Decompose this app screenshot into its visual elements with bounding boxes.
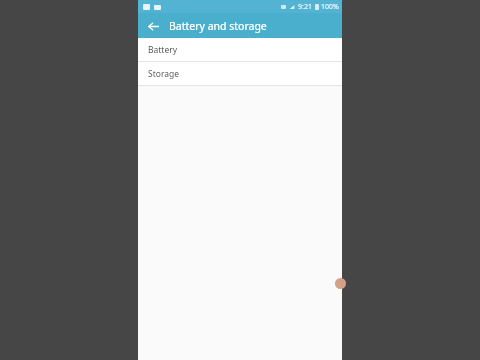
staticText: Battery and storage (169, 19, 267, 33)
staticText: 100% (321, 2, 339, 12)
staticText: Battery (148, 44, 178, 56)
staticText: 9:21 (298, 2, 312, 12)
button[interactable]: Storage (138, 62, 342, 85)
staticText: Storage (148, 68, 180, 80)
button[interactable]: Battery (138, 38, 342, 61)
button[interactable]: Back (144, 17, 162, 35)
